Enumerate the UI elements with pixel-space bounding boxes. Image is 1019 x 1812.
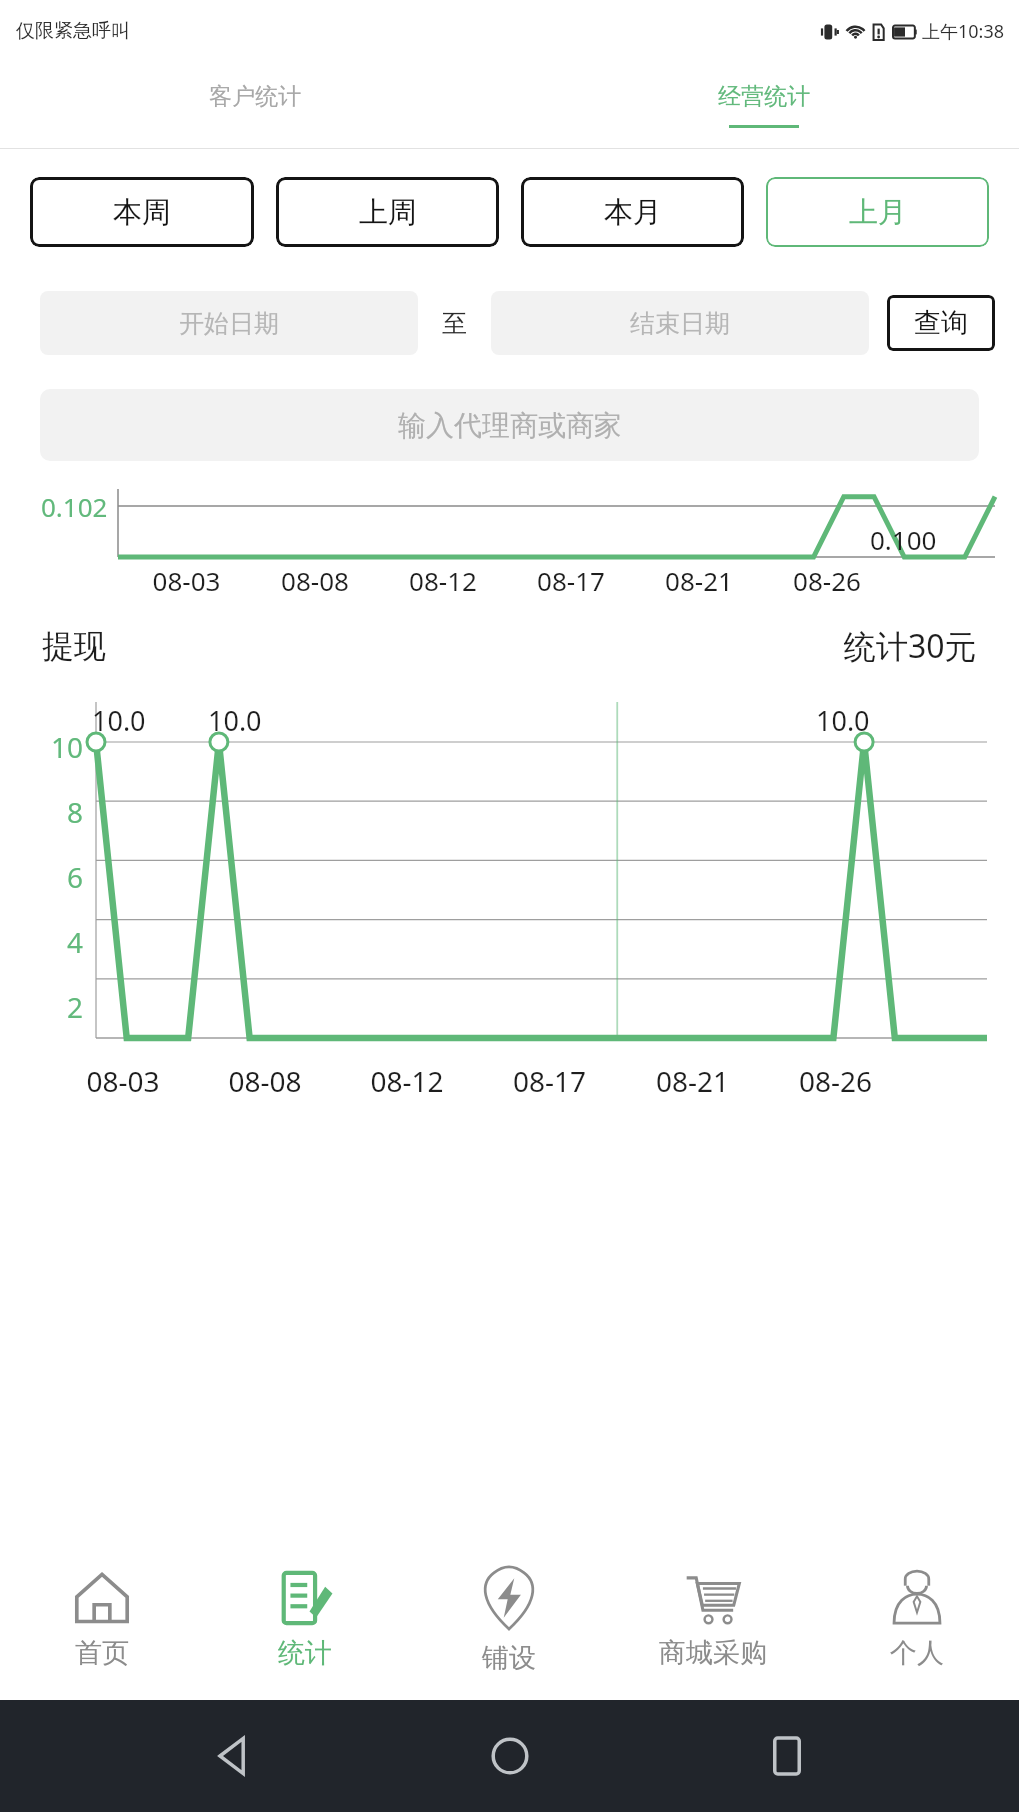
staticText: 输入代理商或商家 [398, 408, 622, 443]
staticText: 上周 [359, 194, 417, 231]
staticText: 08-03 [122, 563, 251, 598]
button[interactable]: 铺设 [407, 1540, 611, 1700]
staticText: 08-21 [621, 1062, 764, 1100]
staticText: 铺设 [482, 1641, 536, 1675]
button[interactable]: 结束日期 [491, 291, 869, 355]
staticText: 10 [51, 728, 84, 766]
button[interactable]: 开始日期 [40, 291, 418, 355]
staticText: 2 [67, 988, 84, 1026]
staticText: 经营统计 [718, 82, 810, 111]
button[interactable]: 统计 [203, 1540, 407, 1700]
staticText: 结束日期 [630, 308, 730, 339]
button[interactable]: 客户统计 [0, 62, 509, 148]
staticText: 08-17 [478, 1062, 621, 1100]
staticText: 0.100 [870, 522, 937, 557]
staticText: 08-26 [763, 563, 891, 598]
button[interactable]: 本月 [521, 177, 744, 247]
button[interactable]: Home [464, 1710, 556, 1802]
staticText: 08-21 [635, 563, 763, 598]
staticText: 首页 [75, 1636, 129, 1670]
button[interactable]: Recents [741, 1710, 833, 1802]
button[interactable]: 上周 [276, 177, 499, 247]
staticText: 至 [442, 308, 467, 339]
staticText: 提现 [42, 626, 106, 666]
staticText: 10.0 [208, 702, 262, 739]
staticText: 08-26 [764, 1062, 907, 1100]
staticText: 客户统计 [209, 82, 301, 111]
staticText: 08-08 [251, 563, 379, 598]
staticText: 查询 [914, 306, 968, 340]
staticText: 商城采购 [659, 1636, 767, 1670]
button[interactable]: 上月 [766, 177, 989, 247]
staticText: 0.102 [41, 489, 108, 524]
staticText: 上月 [849, 194, 907, 231]
staticText: 个人 [890, 1636, 944, 1670]
staticText: 08-08 [194, 1062, 336, 1100]
staticText: 统计30元 [844, 624, 977, 668]
staticText: 4 [67, 923, 84, 961]
staticText: 本周 [113, 194, 171, 231]
button[interactable]: 首页 [0, 1540, 203, 1700]
staticText: 统计 [278, 1636, 332, 1670]
button[interactable]: 查询 [887, 295, 995, 351]
staticText: 仅限紧急呼叫 [16, 19, 130, 43]
staticText: 6 [67, 858, 84, 896]
staticText: 本月 [604, 194, 662, 231]
button[interactable]: 经营统计 [509, 62, 1019, 148]
button[interactable]: 个人 [815, 1540, 1019, 1700]
staticText: 08-12 [336, 1062, 478, 1100]
button[interactable]: Back [186, 1710, 278, 1802]
button[interactable]: 商城采购 [611, 1540, 815, 1700]
staticText: 08-03 [52, 1062, 194, 1100]
staticText: 上午10:38 [922, 19, 1005, 44]
staticText: 开始日期 [179, 308, 279, 339]
staticText: 8 [67, 793, 84, 831]
button[interactable]: 本周 [30, 177, 254, 247]
staticText: 10.0 [816, 702, 870, 739]
staticText: 08-12 [379, 563, 507, 598]
staticText: 10.0 [92, 702, 146, 739]
staticText: 08-17 [507, 563, 635, 598]
button[interactable]: 输入代理商或商家 [40, 389, 979, 461]
